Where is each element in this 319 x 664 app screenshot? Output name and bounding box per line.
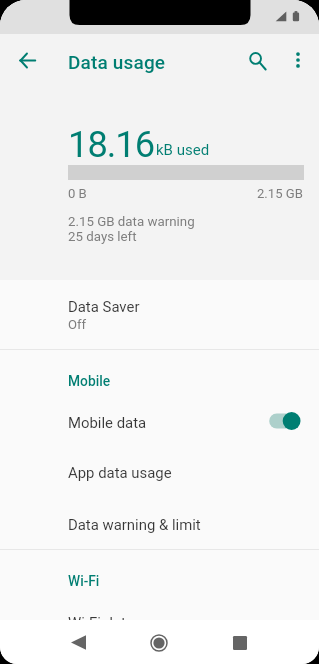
button[interactable] [0, 495, 319, 546]
staticText: App data usage [68, 464, 172, 481]
staticText: 2.15 GB data warning [68, 214, 195, 230]
button[interactable] [0, 444, 319, 495]
button[interactable] [0, 393, 319, 444]
staticText: kB used [156, 141, 210, 159]
button[interactable]: Recents [220, 623, 259, 662]
staticText: Mobile [68, 373, 111, 389]
staticText: 18.16 [68, 123, 155, 166]
staticText: Data usage [68, 51, 166, 73]
staticText: Data warning & limit [68, 516, 201, 533]
staticText: Data Saver [68, 298, 140, 315]
button[interactable] [0, 593, 319, 644]
button[interactable] [0, 282, 319, 349]
button[interactable]: More options [280, 42, 316, 78]
staticText: 2.15 GB [257, 186, 303, 201]
staticText: Mobile data [68, 414, 147, 431]
staticText: 25 days left [68, 229, 137, 245]
staticText: Off [68, 317, 87, 332]
staticText: Wi-Fi data usage [68, 614, 178, 631]
staticText: 0 B [68, 186, 87, 201]
button[interactable]: Mobile data toggle [265, 406, 305, 436]
button[interactable]: Navigate up [9, 42, 45, 78]
staticText: Wi-Fi [68, 573, 100, 589]
button[interactable]: Search [239, 43, 275, 79]
button[interactable]: Home [139, 623, 178, 662]
button[interactable]: Back [59, 623, 98, 662]
